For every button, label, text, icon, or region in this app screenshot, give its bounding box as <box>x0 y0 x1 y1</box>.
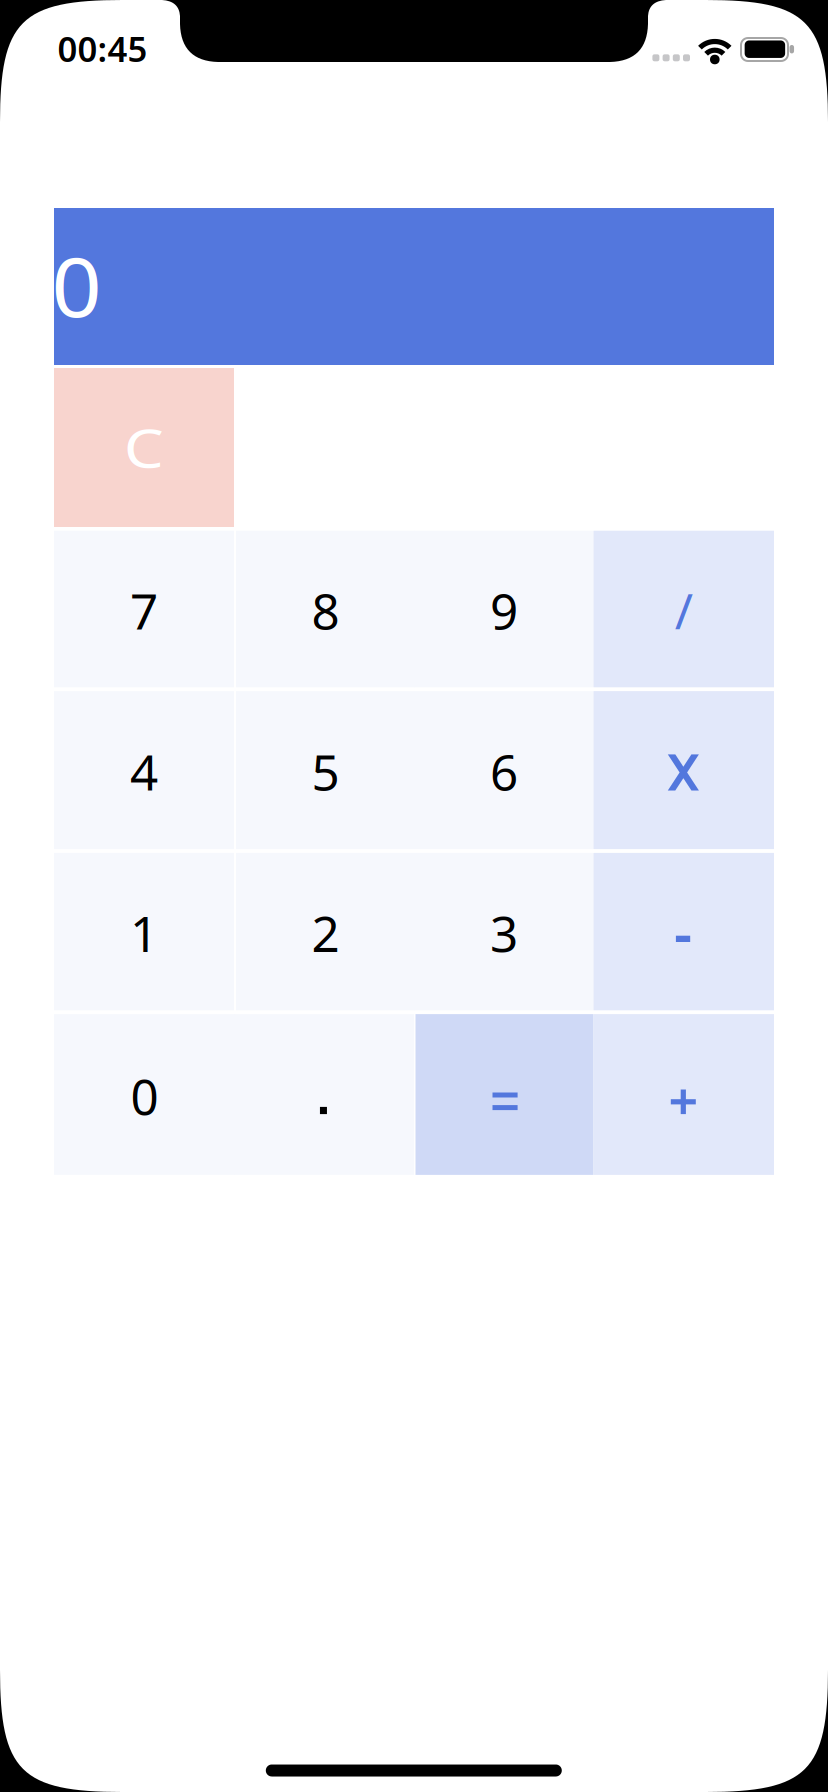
button[interactable]: 7 <box>54 531 234 687</box>
button[interactable]: 8 <box>236 531 415 687</box>
staticText: 6 <box>490 739 518 804</box>
staticText: / <box>675 577 693 643</box>
staticText: 5 <box>311 739 339 804</box>
button[interactable]: / <box>593 531 774 687</box>
staticText: 8 <box>311 577 339 643</box>
button[interactable]: 0 <box>54 1014 235 1175</box>
button[interactable]: Multiply <box>593 691 774 849</box>
staticText: 9 <box>490 577 518 643</box>
button[interactable]: 6 <box>414 691 593 849</box>
staticText: 2 <box>311 900 339 966</box>
button[interactable]: Plus <box>593 1014 774 1175</box>
staticText: C <box>127 413 160 482</box>
staticText: 1 <box>130 900 158 966</box>
staticText: 0 <box>130 1063 158 1128</box>
button[interactable]: 9 <box>414 531 593 687</box>
staticText: 4 <box>130 739 158 804</box>
button[interactable]: Equals <box>415 1014 593 1175</box>
button[interactable]: 1 <box>54 853 234 1010</box>
button[interactable]: 4 <box>54 691 234 849</box>
button[interactable]: Minus <box>593 853 774 1010</box>
button[interactable]: 3 <box>414 853 593 1010</box>
button[interactable]: 5 <box>236 691 415 849</box>
staticText: 0 <box>53 231 100 339</box>
staticText: 3 <box>490 900 518 966</box>
staticText: 7 <box>130 577 158 643</box>
staticText: 00:45 <box>57 25 147 71</box>
button[interactable]: Decimal point <box>234 1014 414 1175</box>
button[interactable]: C <box>54 368 234 527</box>
button[interactable]: 2 <box>236 853 415 1010</box>
